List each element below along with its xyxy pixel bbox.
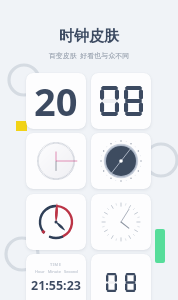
button[interactable] xyxy=(91,194,151,250)
staticText: 21:55:23 xyxy=(31,277,81,294)
staticText: 百变皮肤 好看也与众不同 xyxy=(0,51,178,61)
button[interactable] xyxy=(26,194,86,250)
staticText: 时钟皮肤 xyxy=(0,27,178,46)
staticText: 20 xyxy=(34,75,78,127)
button[interactable]: TIME xyxy=(26,254,86,300)
staticText: TIME xyxy=(50,262,62,267)
staticText: Hour Minute Second xyxy=(35,269,78,274)
button[interactable] xyxy=(91,73,151,129)
button[interactable] xyxy=(26,133,86,189)
button[interactable] xyxy=(91,254,151,300)
button[interactable] xyxy=(91,133,151,189)
button[interactable]: 20 xyxy=(26,73,86,129)
